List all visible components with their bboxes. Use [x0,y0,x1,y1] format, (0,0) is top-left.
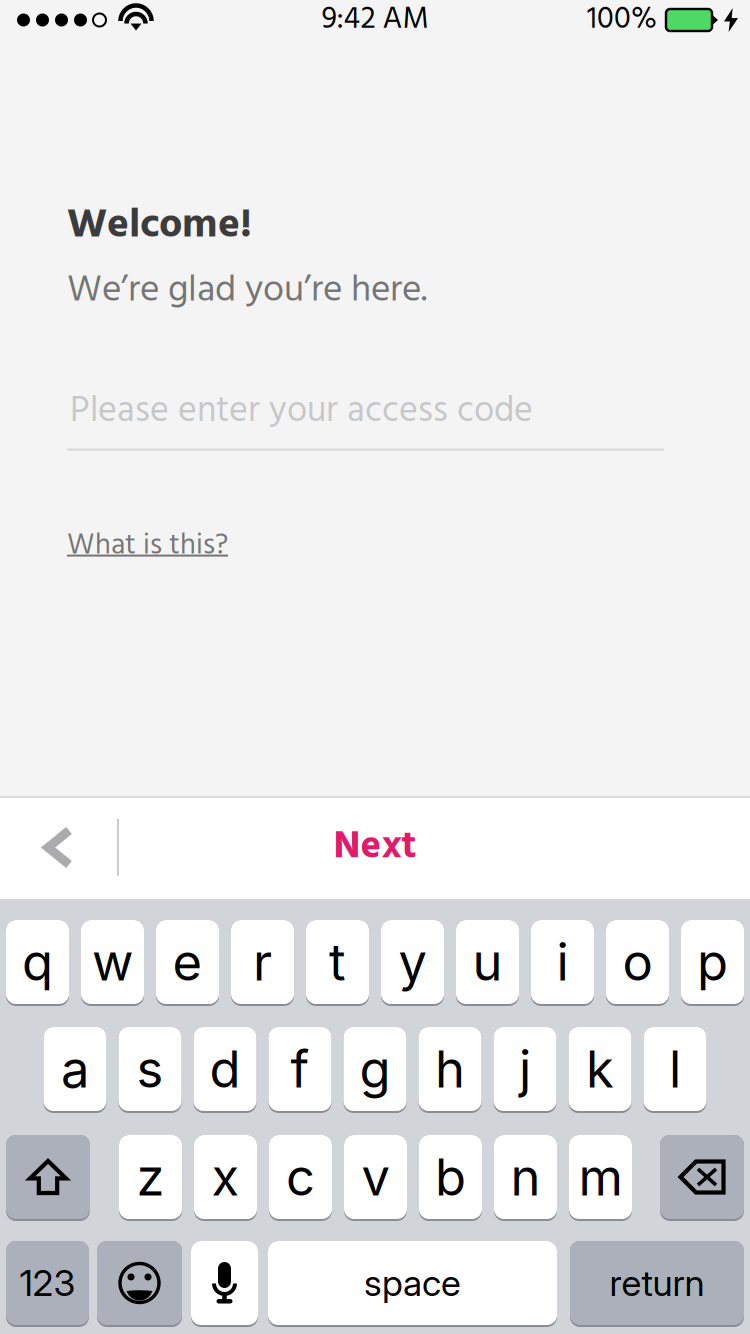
button[interactable]: m [569,1135,632,1221]
button[interactable]: z [119,1135,182,1221]
staticText: v [361,1146,389,1208]
button[interactable] [191,1241,258,1327]
button[interactable]: return [570,1241,744,1327]
staticText: What is this? [67,523,228,570]
button[interactable]: p [681,920,744,1006]
button[interactable]: g [343,1027,406,1113]
staticText: t [329,931,346,993]
staticText: Next [333,816,416,878]
staticText: e [172,931,202,993]
staticText: f [290,1038,309,1100]
button[interactable]: r [231,920,294,1006]
button[interactable]: b [419,1135,482,1221]
button[interactable]: w [81,920,144,1006]
button[interactable]: Next [265,796,485,899]
staticText: We’re glad you’re here. [67,261,427,321]
button[interactable]: u [456,920,519,1006]
staticText: b [435,1146,466,1208]
button[interactable]: t [306,920,369,1006]
staticText: Welcome! [67,193,252,259]
staticText: h [435,1038,465,1100]
staticText: Please enter your access code [70,383,533,440]
button[interactable]: q [6,920,69,1006]
button[interactable]: What is this? [67,523,232,557]
staticText: i [556,931,568,993]
staticText: q [22,931,53,993]
button[interactable]: v [344,1135,407,1221]
staticText: j [519,1038,531,1100]
button[interactable]: n [494,1135,557,1221]
button[interactable]: l [643,1027,706,1113]
staticText: c [286,1146,315,1208]
button[interactable] [660,1135,744,1221]
button[interactable]: s [118,1027,181,1113]
button[interactable]: k [568,1027,631,1113]
staticText: m [578,1146,622,1208]
staticText: r [253,931,272,993]
staticText: k [586,1038,614,1100]
staticText: a [61,1038,89,1100]
button[interactable]: y [381,920,444,1006]
button[interactable]: h [418,1027,481,1113]
button[interactable]: f [268,1027,331,1113]
button[interactable]: space [268,1241,557,1327]
staticText: 9:42 AM [321,0,428,45]
button[interactable]: 123 [6,1241,89,1327]
button[interactable]: Previous field [0,796,117,899]
button[interactable]: d [193,1027,256,1113]
staticText: l [669,1038,681,1100]
staticText: s [136,1038,163,1100]
staticText: y [398,931,426,993]
staticText: w [92,931,133,993]
button[interactable]: x [194,1135,257,1221]
button[interactable]: a [43,1027,106,1113]
button[interactable] [6,1135,90,1221]
staticText: d [209,1038,240,1100]
staticText: space [364,1261,461,1305]
staticText: p [697,931,728,993]
button[interactable]: i [531,920,594,1006]
staticText: x [211,1146,239,1208]
staticText: 123 [19,1261,75,1305]
staticText: z [136,1146,164,1208]
button[interactable]: c [269,1135,332,1221]
staticText: g [359,1038,390,1100]
staticText: 100% [587,0,657,45]
button[interactable]: e [156,920,219,1006]
button[interactable]: j [493,1027,556,1113]
button[interactable] [97,1241,182,1327]
staticText: u [472,931,502,993]
staticText: n [510,1146,540,1208]
staticText: return [609,1261,704,1305]
staticText: o [622,931,652,993]
button[interactable]: o [606,920,669,1006]
